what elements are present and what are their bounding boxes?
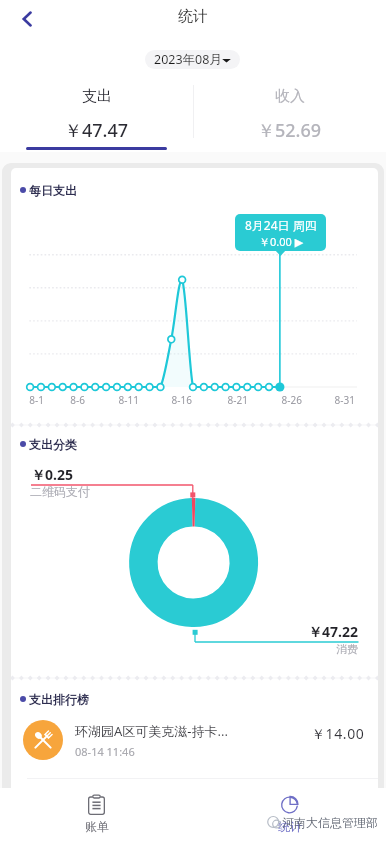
button[interactable]: 8月24日 周四	[235, 214, 326, 251]
staticText: 支出分类	[29, 437, 77, 452]
button[interactable]: 2023年08月	[145, 50, 240, 69]
staticText: 统计	[278, 819, 302, 834]
staticText: 统计	[178, 7, 208, 26]
staticText: ￥0.25	[31, 465, 73, 484]
staticText: ￥14.00	[311, 724, 365, 743]
button[interactable]: Back	[12, 4, 42, 34]
staticText: 8-1	[29, 393, 44, 407]
staticText: 8-16	[171, 393, 192, 407]
staticText: 每日支出	[29, 183, 77, 198]
staticText: 8-26	[281, 393, 302, 407]
staticText: 2023年08月	[154, 51, 222, 68]
staticText: ￥47.47	[64, 118, 129, 143]
staticText: ￥0.00 ▶	[259, 234, 304, 249]
staticText: 支出	[82, 87, 112, 106]
staticText: 账单	[85, 819, 109, 834]
staticText: 8月24日 周四	[245, 217, 317, 233]
staticText: 河南大信息管理部	[282, 815, 378, 830]
button[interactable]: 账单	[0, 788, 193, 841]
staticText: ￥47.22	[308, 622, 358, 641]
staticText: 8-11	[118, 393, 139, 407]
staticText: 环湖园A区可美克滋-持卡...	[75, 722, 228, 740]
staticText: ￥52.69	[257, 118, 322, 143]
staticText: 8-31	[334, 393, 355, 407]
staticText: 收入	[275, 87, 305, 106]
staticText: 支出排行榜	[29, 692, 89, 707]
staticText: 消费	[336, 642, 358, 656]
staticText: 8-21	[227, 393, 248, 407]
staticText: 8-6	[70, 393, 85, 407]
staticText: 二维码支付	[30, 484, 90, 499]
button[interactable]: 统计	[193, 788, 386, 841]
staticText: 08-14 11:46	[75, 744, 135, 759]
button[interactable]: 收入	[193, 80, 386, 152]
button[interactable]: 环湖园A区可美克滋-持卡...	[11, 711, 378, 769]
button[interactable]: 支出	[0, 80, 193, 152]
